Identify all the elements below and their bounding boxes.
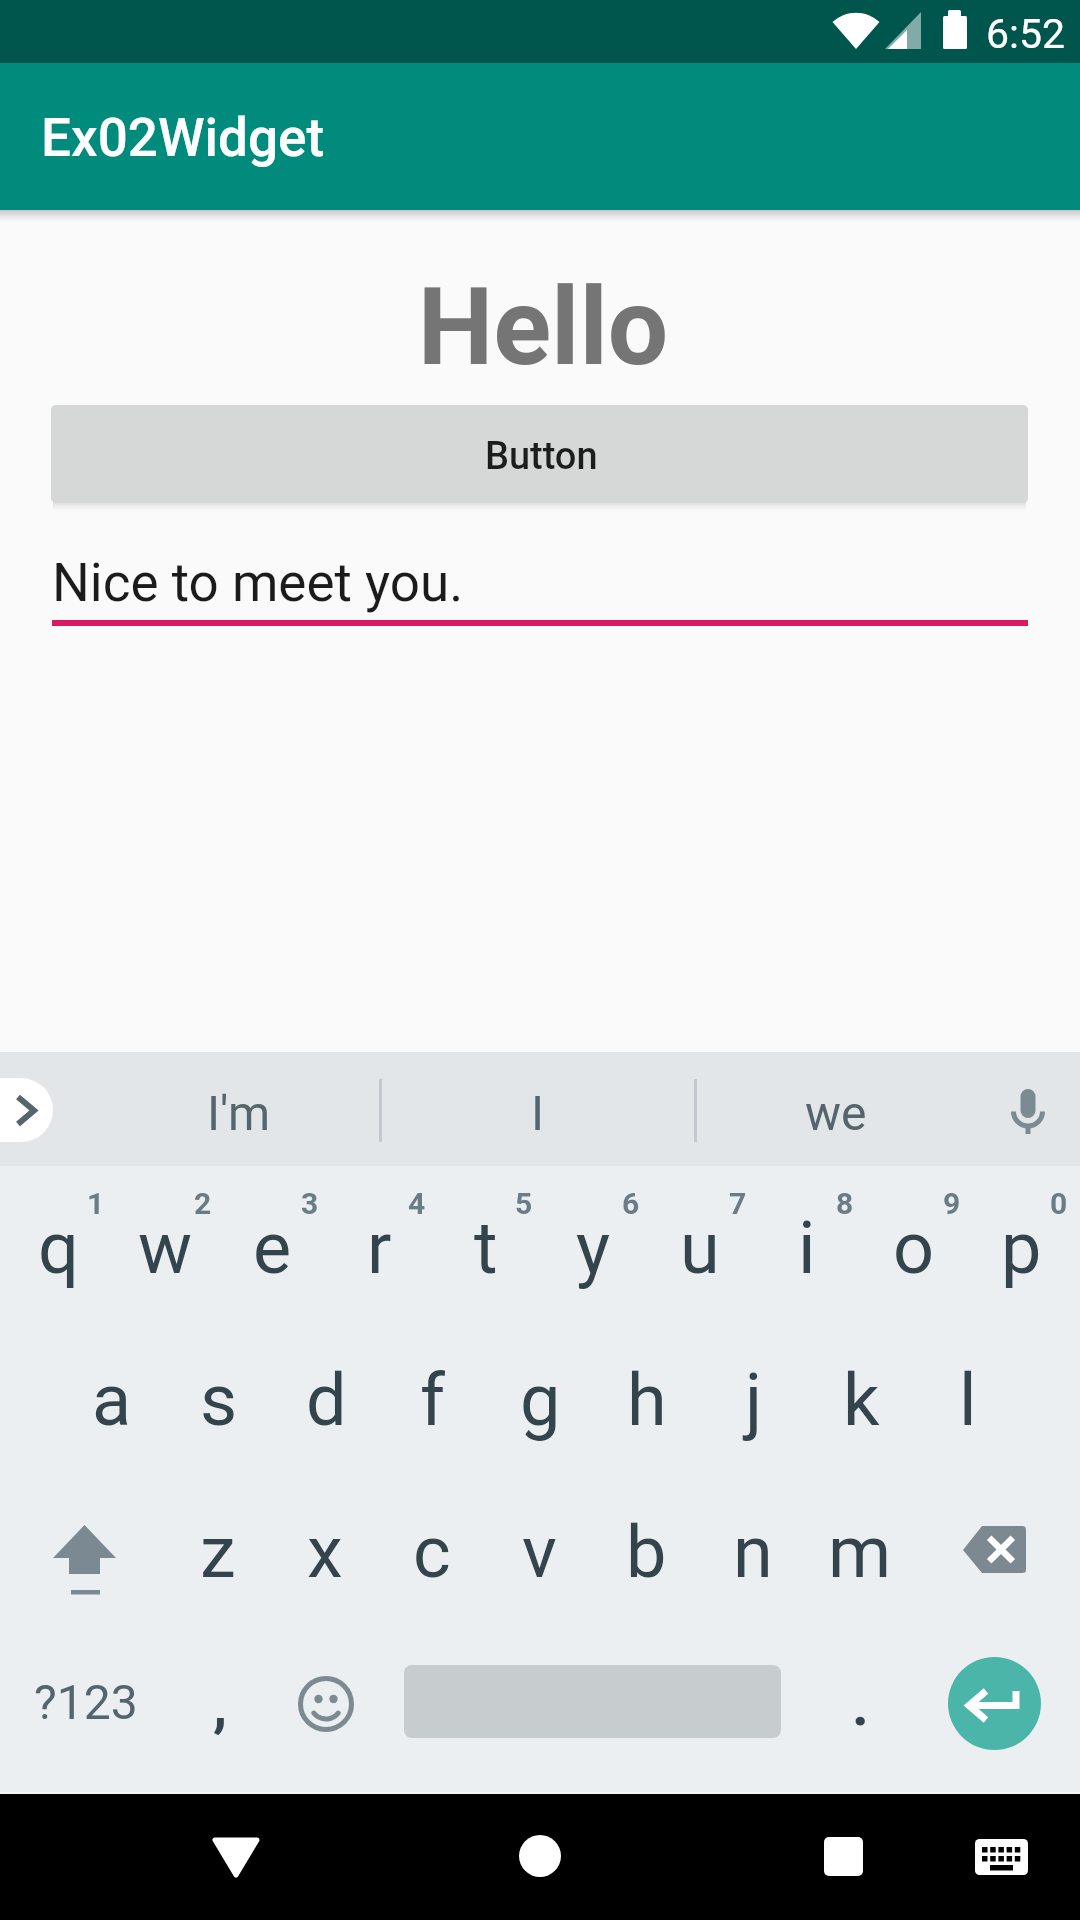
staticText: 2 — [194, 1186, 212, 1221]
staticText: x — [307, 1510, 343, 1594]
staticText: n — [733, 1510, 773, 1594]
staticText: o — [893, 1206, 935, 1290]
staticText: p — [1001, 1206, 1042, 1290]
button[interactable]: 9 — [860, 1166, 968, 1316]
button[interactable]: Enter — [948, 1657, 1041, 1750]
button[interactable]: v — [485, 1477, 593, 1627]
button[interactable]: x — [271, 1477, 379, 1627]
staticText: 1 — [87, 1186, 105, 1221]
button[interactable]: 8 — [753, 1166, 861, 1316]
button[interactable]: a — [58, 1324, 166, 1476]
staticText: Ex02Widget — [41, 107, 325, 169]
button[interactable]: k — [807, 1324, 915, 1476]
button[interactable]: Shift — [6, 1477, 162, 1627]
button[interactable]: Button — [51, 405, 1028, 503]
staticText: . — [852, 1671, 869, 1739]
staticText: i — [798, 1206, 816, 1290]
button[interactable]: m — [806, 1477, 914, 1627]
staticText: Hello — [3, 265, 1080, 390]
button[interactable]: 7 — [646, 1166, 754, 1316]
staticText: 5 — [515, 1186, 533, 1221]
button[interactable]: Nice to meet you. — [52, 540, 1028, 630]
button[interactable]: Voice input — [968, 1052, 1080, 1166]
button[interactable]: Recents — [778, 1794, 910, 1920]
staticText: 8 — [836, 1186, 854, 1221]
button[interactable]: j — [700, 1324, 808, 1476]
staticText: v — [522, 1510, 557, 1594]
button[interactable]: 3 — [218, 1166, 326, 1316]
staticText: 7 — [729, 1186, 747, 1221]
button[interactable]: l — [914, 1324, 1022, 1476]
button[interactable]: 6 — [539, 1166, 647, 1316]
staticText: 3 — [301, 1186, 319, 1221]
staticText: j — [745, 1358, 763, 1442]
button[interactable]: . — [806, 1618, 914, 1792]
button[interactable]: n — [699, 1477, 807, 1627]
staticText: u — [680, 1206, 720, 1290]
staticText: 6 — [622, 1186, 640, 1221]
staticText: Nice to meet you. — [52, 552, 464, 614]
button[interactable]: 4 — [325, 1166, 433, 1316]
button[interactable]: Emoji — [268, 1618, 380, 1792]
button[interactable]: g — [486, 1324, 594, 1476]
staticText: q — [38, 1206, 79, 1290]
staticText: , — [213, 1671, 228, 1739]
button[interactable]: b — [592, 1477, 700, 1627]
button[interactable]: ?123 — [0, 1618, 172, 1792]
button[interactable]: Backspace — [930, 1477, 1080, 1627]
staticText: 0 — [1050, 1186, 1068, 1221]
button[interactable]: we — [696, 1052, 976, 1166]
button[interactable]: I'm — [99, 1052, 379, 1166]
staticText: g — [520, 1358, 561, 1442]
button[interactable]: More suggestions — [0, 1078, 53, 1142]
staticText: f — [420, 1358, 446, 1442]
staticText: w — [138, 1206, 193, 1290]
button[interactable]: d — [272, 1324, 380, 1476]
button[interactable]: f — [379, 1324, 487, 1476]
staticText: h — [627, 1358, 667, 1442]
button[interactable]: Home — [474, 1794, 606, 1920]
button[interactable]: s — [165, 1324, 273, 1476]
staticText: 6:52 — [986, 10, 1066, 58]
staticText: 9 — [943, 1186, 961, 1221]
staticText: ?123 — [34, 1674, 138, 1730]
button[interactable]: c — [378, 1477, 486, 1627]
button[interactable]: 0 — [967, 1166, 1075, 1316]
staticText: l — [959, 1358, 977, 1442]
staticText: k — [843, 1358, 880, 1442]
button[interactable]: h — [593, 1324, 701, 1476]
staticText: m — [828, 1510, 892, 1594]
staticText: r — [367, 1206, 392, 1290]
button[interactable]: Switch keyboard — [940, 1794, 1062, 1920]
button[interactable]: 2 — [111, 1166, 219, 1316]
staticText: a — [92, 1358, 132, 1442]
staticText: c — [413, 1510, 451, 1594]
staticText: s — [200, 1358, 238, 1442]
button[interactable]: z — [164, 1477, 272, 1627]
button[interactable]: , — [172, 1618, 268, 1792]
staticText: e — [253, 1206, 292, 1290]
staticText: t — [474, 1206, 498, 1290]
button[interactable]: I — [398, 1052, 678, 1166]
staticText: z — [200, 1510, 236, 1594]
staticText: I'm — [207, 1085, 271, 1141]
staticText: y — [576, 1206, 611, 1290]
staticText: 4 — [408, 1186, 426, 1221]
staticText: b — [626, 1510, 667, 1594]
staticText: we — [805, 1085, 867, 1141]
staticText: d — [306, 1358, 347, 1442]
staticText: Button — [485, 434, 598, 479]
button[interactable]: 5 — [432, 1166, 540, 1316]
button[interactable]: 1 — [4, 1166, 112, 1316]
button[interactable]: Back — [170, 1794, 302, 1920]
staticText: I — [531, 1085, 545, 1141]
